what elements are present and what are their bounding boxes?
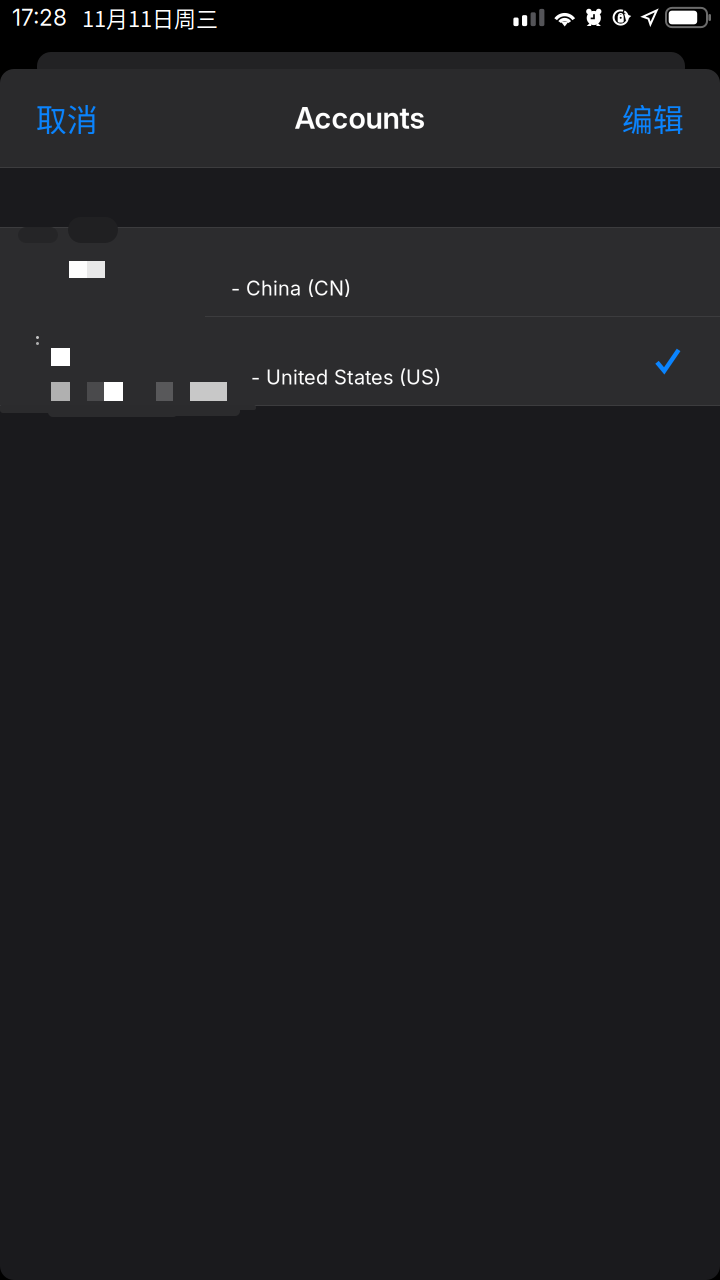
staticText: 11月11日周三 xyxy=(82,2,218,33)
button[interactable]: - China (CN) xyxy=(0,228,720,316)
button[interactable]: 编辑 xyxy=(584,69,720,167)
staticText: Accounts xyxy=(294,100,425,136)
staticText: 17:28 xyxy=(12,4,67,31)
button[interactable]: 取消 xyxy=(0,69,136,167)
staticText: 取消 xyxy=(36,96,98,140)
staticText: - China (CN) xyxy=(231,276,351,300)
staticText: 编辑 xyxy=(622,96,684,140)
button[interactable]: - United States (US) xyxy=(0,317,720,405)
staticText: - United States (US) xyxy=(251,365,441,389)
